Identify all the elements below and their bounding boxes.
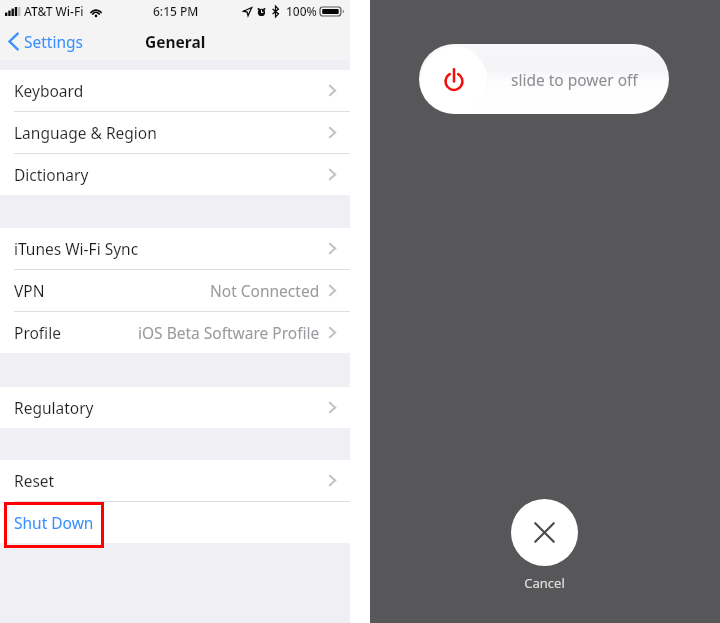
staticText: 100% bbox=[286, 3, 317, 19]
button[interactable]: Reset bbox=[0, 460, 350, 501]
button[interactable]: slide to power off bbox=[419, 44, 669, 114]
staticText: Language & Region bbox=[14, 122, 157, 143]
button[interactable]: VPN bbox=[0, 270, 350, 311]
staticText: Reset bbox=[14, 470, 55, 491]
staticText: General bbox=[145, 31, 206, 52]
staticText: Dictionary bbox=[14, 164, 89, 185]
button[interactable]: iTunes Wi-Fi Sync bbox=[0, 228, 350, 269]
staticText: Not Connected bbox=[210, 280, 320, 301]
button[interactable]: Settings bbox=[0, 22, 93, 60]
button[interactable]: Profile bbox=[0, 312, 350, 353]
staticText: Cancel bbox=[524, 574, 565, 592]
staticText: Settings bbox=[24, 31, 83, 52]
staticText: AT&T Wi-Fi bbox=[24, 3, 84, 19]
button[interactable]: Cancel bbox=[511, 499, 578, 566]
staticText: iOS Beta Software Profile bbox=[138, 322, 320, 343]
staticText: slide to power off bbox=[511, 69, 638, 90]
button[interactable]: Keyboard bbox=[0, 70, 350, 111]
button[interactable]: Shut Down bbox=[0, 502, 350, 543]
staticText: Regulatory bbox=[14, 397, 94, 418]
staticText: iTunes Wi-Fi Sync bbox=[14, 238, 139, 259]
button[interactable]: Regulatory bbox=[0, 387, 350, 428]
staticText: 6:15 PM bbox=[153, 3, 199, 19]
staticText: Shut Down bbox=[14, 512, 94, 533]
staticText: Profile bbox=[14, 322, 61, 343]
staticText: Keyboard bbox=[14, 80, 84, 101]
button[interactable]: Dictionary bbox=[0, 154, 350, 195]
staticText: VPN bbox=[14, 280, 45, 301]
button[interactable]: Language & Region bbox=[0, 112, 350, 153]
